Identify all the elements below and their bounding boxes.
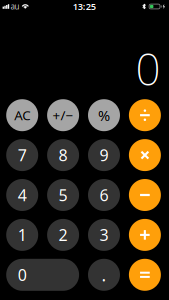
button[interactable]: 6 (88, 179, 120, 211)
button[interactable]: × (129, 139, 161, 171)
staticText: 5 (59, 184, 68, 206)
staticText: 7 (18, 144, 27, 166)
staticText: 6 (99, 184, 108, 206)
button[interactable]: . (88, 259, 120, 291)
button[interactable]: 3 (88, 219, 120, 251)
button[interactable]: +/− (47, 99, 79, 131)
button[interactable]: ÷ (129, 99, 161, 131)
button[interactable]: = (129, 259, 161, 291)
staticText: 9 (99, 144, 108, 166)
staticText: +/− (53, 106, 74, 124)
staticText: 8 (59, 144, 68, 166)
button[interactable]: 5 (47, 179, 79, 211)
staticText: 13:25 (73, 0, 96, 13)
staticText: 2 (59, 224, 68, 245)
button[interactable]: Zero (6, 259, 79, 291)
staticText: AC (14, 106, 30, 124)
button[interactable]: 8 (47, 139, 79, 171)
button[interactable]: 7 (6, 139, 38, 171)
button[interactable]: 2 (47, 219, 79, 251)
staticText: 0 (135, 39, 160, 98)
button[interactable]: % (88, 99, 120, 131)
button[interactable]: AC (6, 99, 38, 131)
button[interactable]: 9 (88, 139, 120, 171)
button[interactable]: + (129, 219, 161, 251)
button[interactable]: − (129, 179, 161, 211)
staticText: . (101, 263, 106, 286)
staticText: 0 (18, 264, 27, 285)
button[interactable]: 4 (6, 179, 38, 211)
staticText: 1 (18, 224, 27, 245)
staticText: % (98, 105, 110, 125)
staticText: au (11, 1, 20, 12)
button[interactable]: 1 (6, 219, 38, 251)
staticText: 3 (99, 224, 108, 245)
staticText: 4 (18, 184, 27, 206)
